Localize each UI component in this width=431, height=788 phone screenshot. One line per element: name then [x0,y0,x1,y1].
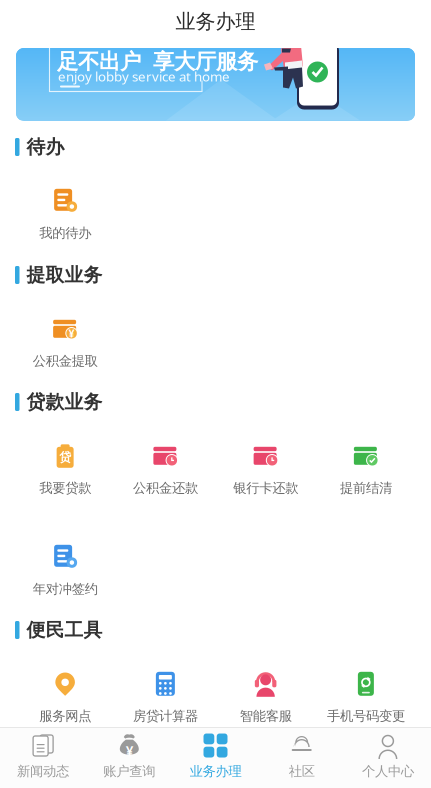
staticText: 提取业务 [26,263,102,286]
staticText: ¥ [69,326,75,340]
staticText: enjoy lobby service at home [58,67,230,85]
button[interactable]: 公积金还款 [115,443,215,495]
staticText: 贷款业务 [26,390,102,413]
staticText: 提前结清 [340,480,392,496]
staticText: 新闻动态 [17,763,69,779]
staticText: 业务办理 [189,763,241,779]
button[interactable]: 业务办理 [172,727,259,788]
staticText: 业务办理 [175,9,255,34]
button[interactable]: 提前结清 [316,443,416,495]
button[interactable]: 社区 [259,727,345,788]
button[interactable]: 新闻动态 [0,727,86,788]
staticText: 我的待办 [39,225,91,241]
staticText: 贷 [59,450,71,465]
staticText: ¥ [126,742,134,760]
button[interactable]: 服务网点 [15,671,115,723]
button[interactable]: 贷 [15,443,115,495]
button[interactable]: 手机号码变更 [316,671,416,723]
staticText: 便民工具 [26,618,102,641]
staticText: 智能客服 [240,708,292,724]
button[interactable]: ¥ [15,316,115,368]
staticText: 社区 [289,763,315,779]
staticText: 手机号码变更 [327,708,405,724]
staticText: 足不出户 享大厅服务 [57,48,258,75]
staticText: 个人中心 [362,763,414,779]
staticText: 年对冲签约 [33,581,98,597]
button[interactable]: ¥ [86,727,172,788]
staticText: 公积金提取 [33,353,98,369]
staticText: 服务网点 [39,708,91,724]
button[interactable]: 房贷计算器 [115,671,215,723]
staticText: 我要贷款 [39,480,91,496]
staticText: 待办 [26,135,64,158]
button[interactable]: 个人中心 [345,727,431,788]
button[interactable]: 年对冲签约 [15,544,115,596]
staticText: 公积金还款 [133,480,198,496]
staticText: 银行卡还款 [233,480,298,496]
staticText: 账户查询 [103,763,155,779]
staticText: 房贷计算器 [133,708,198,724]
button[interactable]: 银行卡还款 [215,443,316,495]
button[interactable]: 我的待办 [15,188,115,240]
button[interactable]: 智能客服 [215,671,316,723]
